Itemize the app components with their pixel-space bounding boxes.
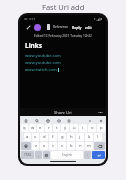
staticText: j bbox=[79, 134, 81, 140]
button[interactable]: Reference bbox=[53, 25, 69, 29]
button[interactable]: GIF bbox=[56, 118, 61, 123]
button[interactable]: Emoji bbox=[43, 151, 50, 159]
staticText: y bbox=[64, 125, 67, 131]
staticText: edit bbox=[85, 25, 92, 30]
staticText: , bbox=[38, 152, 40, 158]
staticText: c bbox=[52, 143, 55, 149]
button[interactable]: g bbox=[58, 133, 66, 141]
button[interactable]: ?123 bbox=[21, 151, 34, 159]
button[interactable]: t bbox=[53, 124, 60, 132]
staticText: h bbox=[70, 134, 73, 140]
button[interactable]: s bbox=[32, 133, 39, 141]
button[interactable]: www.youtube.com bbox=[25, 53, 61, 58]
button[interactable]: Search bbox=[34, 118, 39, 123]
staticText: www.youtube.com bbox=[25, 60, 61, 65]
staticText: English bbox=[62, 153, 73, 157]
button[interactable]: m bbox=[85, 142, 93, 150]
staticText: t bbox=[56, 125, 58, 131]
button[interactable]: r bbox=[45, 124, 52, 132]
staticText: g bbox=[61, 134, 64, 140]
staticText: i bbox=[82, 125, 84, 131]
staticText: www.youtube.com bbox=[25, 53, 61, 58]
staticText: Reply bbox=[72, 25, 82, 30]
staticText: p bbox=[100, 125, 103, 131]
button[interactable]: Backspace bbox=[94, 142, 105, 150]
button[interactable]: f bbox=[49, 133, 57, 141]
button[interactable]: v bbox=[58, 142, 66, 150]
button[interactable]: www.youtube.com bbox=[25, 60, 61, 65]
staticText: Reference bbox=[53, 25, 69, 29]
staticText: k bbox=[88, 134, 91, 140]
button[interactable]: k bbox=[85, 133, 93, 141]
button[interactable]: , bbox=[35, 151, 42, 159]
button[interactable]: l bbox=[94, 133, 102, 141]
button[interactable]: a bbox=[24, 133, 31, 141]
button[interactable]: e bbox=[37, 124, 44, 132]
button[interactable]: u bbox=[70, 124, 78, 132]
staticText: o bbox=[91, 125, 94, 131]
staticText: d bbox=[43, 134, 46, 140]
button[interactable]: Account bbox=[34, 24, 41, 31]
staticText: s bbox=[34, 134, 37, 140]
button[interactable]: y bbox=[61, 124, 69, 132]
button[interactable]: Sticker bbox=[66, 118, 71, 123]
button[interactable]: p bbox=[97, 124, 105, 132]
staticText: e bbox=[39, 125, 42, 131]
button[interactable]: i bbox=[79, 124, 87, 132]
button[interactable]: w bbox=[29, 124, 36, 132]
staticText: n bbox=[79, 143, 82, 149]
button[interactable]: More bbox=[87, 118, 92, 123]
button[interactable]: Settings bbox=[98, 118, 103, 123]
staticText: z bbox=[35, 143, 37, 149]
button[interactable]: . bbox=[84, 151, 91, 159]
staticText: www.twitch.com bbox=[25, 67, 57, 72]
button[interactable]: Enter bbox=[92, 151, 105, 159]
staticText: q bbox=[23, 125, 26, 131]
button[interactable]: n bbox=[76, 142, 84, 150]
staticText: l bbox=[97, 134, 99, 140]
staticText: f bbox=[52, 134, 54, 140]
button[interactable]: Space bbox=[51, 151, 83, 159]
staticText: v bbox=[61, 143, 64, 149]
button[interactable]: Reply bbox=[72, 25, 82, 30]
staticText: Links bbox=[25, 41, 43, 50]
button[interactable]: edit bbox=[85, 25, 92, 30]
staticText: a bbox=[26, 134, 29, 140]
staticText: w bbox=[31, 125, 35, 131]
button[interactable]: o bbox=[88, 124, 96, 132]
button[interactable]: z bbox=[32, 142, 39, 150]
button[interactable]: Emoji bbox=[45, 118, 50, 123]
staticText: Share Uri bbox=[54, 110, 72, 115]
staticText: ?123 bbox=[24, 153, 31, 157]
button[interactable]: j bbox=[76, 133, 84, 141]
button[interactable]: h bbox=[67, 133, 75, 141]
button[interactable]: More options bbox=[98, 111, 103, 114]
staticText: x bbox=[43, 143, 46, 149]
button[interactable]: Attach bbox=[24, 23, 32, 31]
button[interactable]: Clipboard bbox=[23, 118, 28, 123]
staticText: r bbox=[48, 125, 50, 131]
staticText: u bbox=[73, 125, 76, 131]
button[interactable]: Shift bbox=[21, 142, 31, 150]
button[interactable]: d bbox=[40, 133, 48, 141]
staticText: Fast Url add bbox=[42, 2, 85, 12]
button[interactable]: q bbox=[21, 124, 28, 132]
staticText: m bbox=[87, 143, 91, 149]
button[interactable]: c bbox=[49, 142, 57, 150]
button[interactable]: b bbox=[67, 142, 75, 150]
staticText: . bbox=[87, 152, 89, 158]
button[interactable]: www.twitch.com bbox=[25, 67, 57, 72]
button[interactable]: x bbox=[40, 142, 48, 150]
staticText: b bbox=[70, 143, 73, 149]
staticText: Edited 12 February 2021 Tuesday 12h32 bbox=[34, 34, 92, 38]
